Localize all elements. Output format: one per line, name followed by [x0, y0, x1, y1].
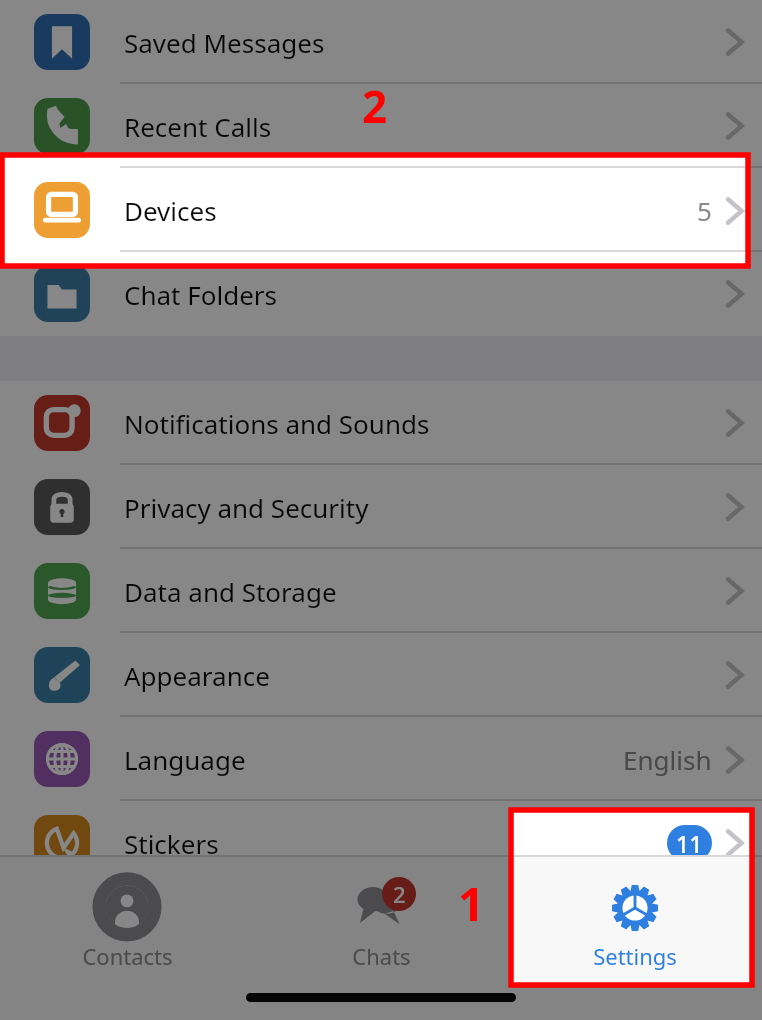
staticText: 1: [458, 872, 485, 935]
button[interactable]: Devices: [0, 168, 762, 252]
button[interactable]: Data and Storage: [0, 549, 762, 633]
staticText: 11: [676, 828, 703, 859]
staticText: Contacts: [82, 941, 173, 971]
staticText: 2: [362, 76, 388, 136]
staticText: Settings: [593, 941, 677, 971]
button[interactable]: Notifications and Sounds: [0, 381, 762, 465]
button[interactable]: Saved Messages: [0, 0, 762, 84]
staticText: Chats: [352, 941, 411, 971]
button[interactable]: Appearance: [0, 633, 762, 717]
button[interactable]: Chat Folders: [0, 252, 762, 336]
button[interactable]: Recent Calls: [0, 84, 762, 168]
staticText: Notifications and Sounds: [124, 406, 430, 441]
staticText: Appearance: [124, 658, 270, 693]
staticText: 5: [697, 193, 712, 228]
button[interactable]: Settings: [508, 857, 762, 987]
staticText: Privacy and Security: [124, 490, 369, 525]
staticText: 2: [393, 879, 406, 909]
button[interactable]: Chats: [254, 857, 508, 987]
button[interactable]: Contacts: [0, 857, 254, 987]
staticText: Devices: [124, 193, 217, 228]
staticText: Recent Calls: [124, 109, 272, 144]
button[interactable]: Stickers: [0, 801, 762, 885]
staticText: Stickers: [124, 826, 219, 861]
button[interactable]: Privacy and Security: [0, 465, 762, 549]
staticText: Data and Storage: [124, 574, 337, 609]
staticText: English: [623, 742, 712, 777]
staticText: Saved Messages: [124, 25, 325, 60]
button[interactable]: Language: [0, 717, 762, 801]
staticText: Language: [124, 742, 246, 777]
staticText: Chat Folders: [124, 277, 278, 312]
